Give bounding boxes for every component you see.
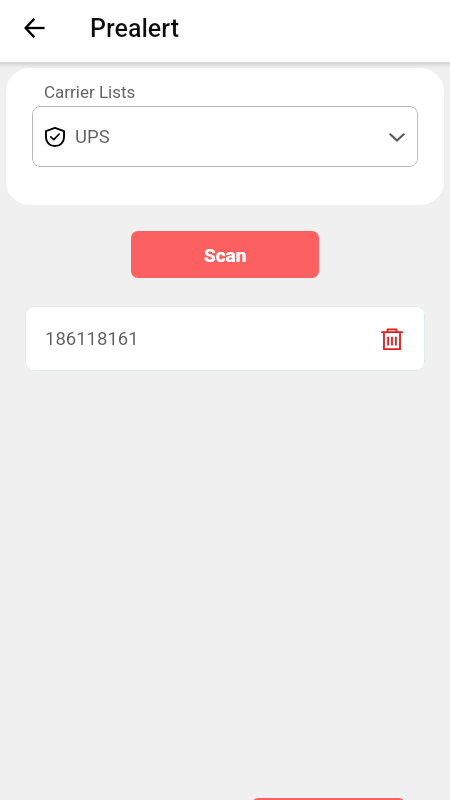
button[interactable]: 186118161 (25, 306, 425, 371)
button[interactable]: Submit (252, 798, 405, 800)
button[interactable]: Delete (376, 323, 408, 355)
button[interactable]: UPS (32, 106, 418, 167)
staticText: Carrier Lists (44, 82, 136, 102)
staticText: 186118161 (45, 328, 139, 350)
staticText: Scan (204, 244, 247, 266)
button[interactable]: Scan (131, 231, 319, 278)
staticText: UPS (75, 126, 110, 148)
staticText: Prealert (90, 14, 179, 43)
button[interactable]: Back (14, 7, 56, 49)
